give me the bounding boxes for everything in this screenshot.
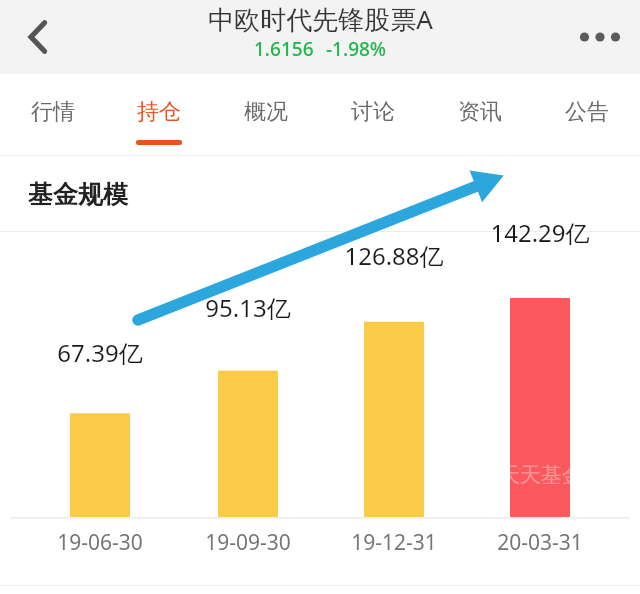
button[interactable]: Back bbox=[0, 0, 76, 74]
button[interactable]: 资讯 bbox=[426, 74, 533, 156]
staticText: 19-06-30 bbox=[57, 528, 143, 557]
button[interactable]: 公告 bbox=[533, 74, 640, 156]
staticText: 95.13亿 bbox=[205, 291, 291, 324]
button[interactable]: 持仓 bbox=[106, 74, 212, 156]
staticText: 142.29亿 bbox=[490, 216, 590, 249]
staticText: 基金规模 bbox=[28, 179, 128, 210]
button[interactable]: 概况 bbox=[212, 74, 319, 156]
button[interactable]: More options bbox=[560, 0, 640, 74]
staticText: 资讯 bbox=[458, 98, 502, 126]
staticText: 126.88亿 bbox=[344, 239, 444, 272]
staticText: 20-03-31 bbox=[497, 528, 583, 557]
staticText: 67.39亿 bbox=[57, 336, 143, 369]
button[interactable]: 行情 bbox=[0, 74, 106, 156]
staticText: 讨论 bbox=[351, 98, 395, 126]
staticText: 19-12-31 bbox=[351, 528, 437, 557]
staticText: 中欧时代先锋股票A bbox=[208, 1, 433, 37]
button[interactable]: 讨论 bbox=[319, 74, 426, 156]
staticText: 公告 bbox=[565, 98, 609, 126]
staticText: 持仓 bbox=[137, 98, 181, 126]
staticText: 1.6156 bbox=[254, 36, 314, 62]
staticText: -1.98% bbox=[326, 36, 387, 62]
staticText: 19-09-30 bbox=[205, 528, 291, 557]
staticText: 行情 bbox=[31, 98, 75, 126]
staticText: 概况 bbox=[244, 98, 288, 126]
staticText: 天天基金 bbox=[499, 462, 583, 488]
